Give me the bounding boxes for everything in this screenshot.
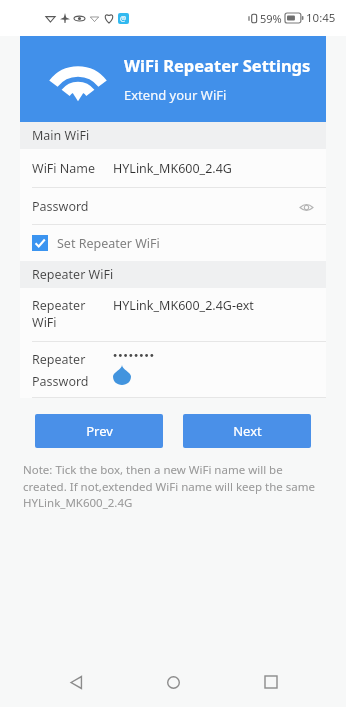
staticText: Main WiFi bbox=[32, 127, 90, 144]
staticText: WiFi Repeater Settings bbox=[124, 54, 311, 76]
staticText: Next bbox=[233, 422, 262, 440]
button[interactable]: Repeater bbox=[20, 342, 326, 398]
staticText: Repeater WiFi bbox=[32, 266, 114, 283]
staticText: Set Repeater WiFi bbox=[57, 235, 160, 252]
button[interactable]: Home bbox=[151, 660, 195, 704]
button[interactable]: Password bbox=[20, 188, 326, 225]
staticText: Password bbox=[32, 373, 89, 390]
staticText: name bbox=[32, 336, 66, 342]
button[interactable]: Back bbox=[54, 660, 98, 704]
button[interactable]: Set Repeater WiFi bbox=[20, 225, 326, 261]
button[interactable]: Show password bbox=[295, 196, 317, 218]
button[interactable]: Next bbox=[183, 414, 311, 448]
staticText: Repeater bbox=[32, 351, 86, 368]
staticText: HYLink_MK600_2.4G bbox=[113, 160, 232, 177]
staticText: Note: Tick the box, then a new WiFi name… bbox=[23, 462, 326, 510]
staticText: @ bbox=[120, 14, 127, 24]
button[interactable]: WiFi Name bbox=[20, 149, 326, 188]
staticText: WiFi Name bbox=[32, 160, 105, 177]
staticText: HYLink_MK600_2.4G-ext bbox=[113, 297, 254, 314]
staticText: Prev bbox=[86, 422, 113, 440]
staticText: Extend your WiFi bbox=[124, 86, 227, 104]
staticText: 10:45 bbox=[306, 10, 336, 26]
staticText: Repeater WiFi bbox=[32, 297, 113, 331]
staticText: Password bbox=[32, 198, 89, 215]
button[interactable]: Recent apps bbox=[249, 660, 293, 704]
staticText: 59% bbox=[260, 11, 282, 26]
button[interactable]: Repeater WiFi bbox=[20, 288, 326, 342]
button[interactable]: Prev bbox=[35, 414, 163, 448]
